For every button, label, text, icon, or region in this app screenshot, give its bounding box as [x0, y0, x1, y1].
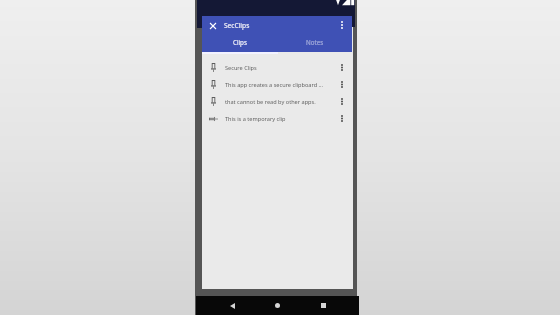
- staticText: Secure Clips: [225, 64, 331, 72]
- button[interactable]: This app creates a secure clipboard ...: [202, 76, 353, 93]
- button[interactable]: Close: [205, 18, 220, 33]
- button[interactable]: Back: [220, 296, 244, 315]
- button[interactable]: Notes: [278, 34, 352, 49]
- staticText: SecClips: [224, 21, 250, 30]
- button[interactable]: Item options: [331, 110, 353, 127]
- staticText: that cannot be read by other apps.: [225, 98, 331, 106]
- button[interactable]: Home: [265, 296, 289, 315]
- button[interactable]: Secure Clips: [202, 59, 353, 76]
- staticText: Notes: [306, 38, 324, 46]
- button[interactable]: Recent apps: [311, 296, 335, 315]
- button[interactable]: Clips: [202, 34, 278, 49]
- button[interactable]: This is a temporary clip: [202, 110, 353, 127]
- button[interactable]: More options: [335, 18, 349, 32]
- button[interactable]: Item options: [331, 93, 353, 110]
- button[interactable]: that cannot be read by other apps.: [202, 93, 353, 110]
- staticText: Clips: [233, 38, 247, 46]
- button[interactable]: Item options: [331, 59, 353, 76]
- button[interactable]: Item options: [331, 76, 353, 93]
- staticText: This app creates a secure clipboard ...: [225, 81, 331, 89]
- staticText: This is a temporary clip: [225, 115, 331, 123]
